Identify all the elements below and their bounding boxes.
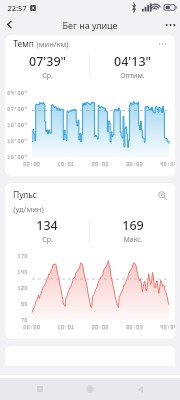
staticText: Ср. [42, 235, 53, 244]
staticText: Макс. [123, 235, 143, 244]
staticText: Ср. [42, 71, 53, 80]
staticText: 07'39" [29, 53, 66, 70]
button[interactable]: Back [130, 379, 150, 399]
button[interactable]: More options [161, 15, 180, 34]
staticText: (мин/км) [36, 39, 69, 49]
staticText: Темп [13, 38, 34, 50]
button[interactable]: Темп [5, 35, 175, 176]
staticText: 22:57 [7, 3, 27, 13]
staticText: Бег на улице [62, 19, 118, 31]
staticText: Оптим. [120, 71, 145, 80]
button[interactable]: Пульс [5, 183, 175, 339]
staticText: 134 [36, 217, 58, 234]
staticText: Пульс [13, 189, 37, 201]
staticText: (уд/мин) [13, 204, 44, 214]
button[interactable]: Home [80, 379, 100, 399]
button[interactable]: Back [0, 15, 19, 34]
button[interactable]: Recent apps [30, 379, 50, 399]
staticText: 04'13" [114, 53, 151, 70]
staticText: 169 [122, 217, 144, 234]
button[interactable]: Zoom in [156, 189, 168, 201]
